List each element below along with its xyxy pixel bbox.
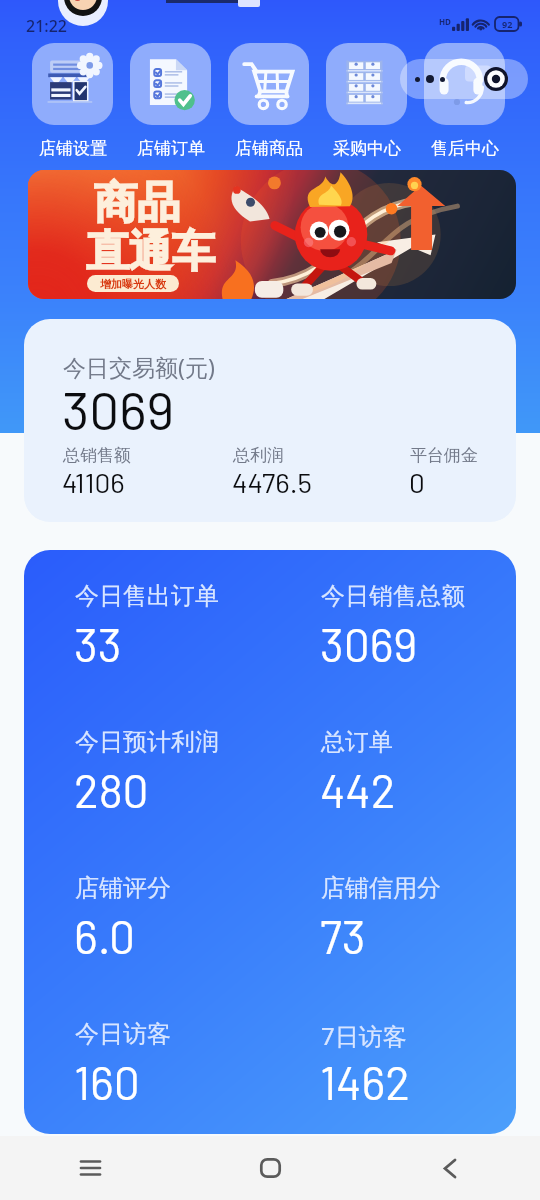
staticText: 41106	[62, 465, 125, 499]
staticText: 今日交易额(元)	[63, 351, 215, 382]
staticText: HD	[439, 16, 451, 27]
button[interactable]: 店铺订单	[130, 43, 211, 125]
staticText: 4476.5	[232, 465, 312, 499]
button[interactable]: Back	[360, 1136, 540, 1200]
staticText: 店铺信用分	[321, 873, 441, 903]
button[interactable]: Home	[180, 1136, 360, 1200]
staticText: 3069	[62, 377, 175, 441]
button[interactable]: 7日访客	[309, 1007, 516, 1097]
button[interactable]: 采购中心	[326, 43, 407, 125]
button[interactable]: 今日访客	[63, 1007, 283, 1097]
staticText: 0	[409, 465, 425, 499]
button[interactable]: Recents	[0, 1136, 180, 1200]
staticText: 增加曝光人数	[100, 277, 166, 291]
staticText: 商品	[94, 176, 180, 230]
button[interactable]: 今日售出订单	[63, 569, 283, 659]
button[interactable]: 店铺设置	[32, 43, 113, 125]
staticText: 3069	[320, 616, 418, 671]
staticText: 平台佣金	[410, 445, 478, 466]
staticText: 33	[74, 616, 122, 671]
staticText: 店铺评分	[75, 873, 171, 903]
staticText: 采购中心	[333, 138, 401, 159]
staticText: 1462	[320, 1054, 410, 1109]
staticText: 今日预计利润	[75, 727, 219, 757]
button[interactable]: 总订单	[309, 715, 516, 805]
button[interactable]: 店铺商品	[228, 43, 309, 125]
staticText: 21:22	[26, 15, 67, 37]
staticText: 6.0	[74, 908, 135, 963]
staticText: 442	[320, 762, 396, 817]
staticText: 总销售额	[63, 445, 131, 466]
staticText: 280	[74, 762, 149, 817]
button[interactable]: 商品直通车 广告	[28, 170, 516, 299]
staticText: 73	[320, 908, 366, 963]
button[interactable]: Screen recorder	[400, 59, 528, 99]
staticText: 160	[74, 1054, 140, 1109]
button[interactable]: 售后中心	[424, 43, 505, 125]
staticText: 售后中心	[431, 138, 499, 159]
staticText: 今日售出订单	[75, 581, 219, 611]
button[interactable]: 今日预计利润	[63, 715, 283, 805]
staticText: 7日访客	[321, 1019, 407, 1052]
button[interactable]: 店铺评分	[63, 861, 283, 951]
staticText: 直通车	[86, 225, 215, 279]
staticText: 今日访客	[75, 1019, 171, 1049]
staticText: 店铺订单	[137, 138, 205, 159]
button[interactable]: 今日销售总额	[309, 569, 516, 659]
button[interactable]: 店铺信用分	[309, 861, 516, 951]
staticText: 总订单	[321, 727, 393, 757]
staticText: 92	[502, 18, 513, 30]
staticText: 今日销售总额	[321, 581, 465, 611]
staticText: 店铺商品	[235, 138, 303, 159]
staticText: 总利润	[233, 445, 284, 466]
staticText: 店铺设置	[39, 138, 107, 159]
button[interactable]: 今日交易额(元)	[24, 319, 516, 522]
